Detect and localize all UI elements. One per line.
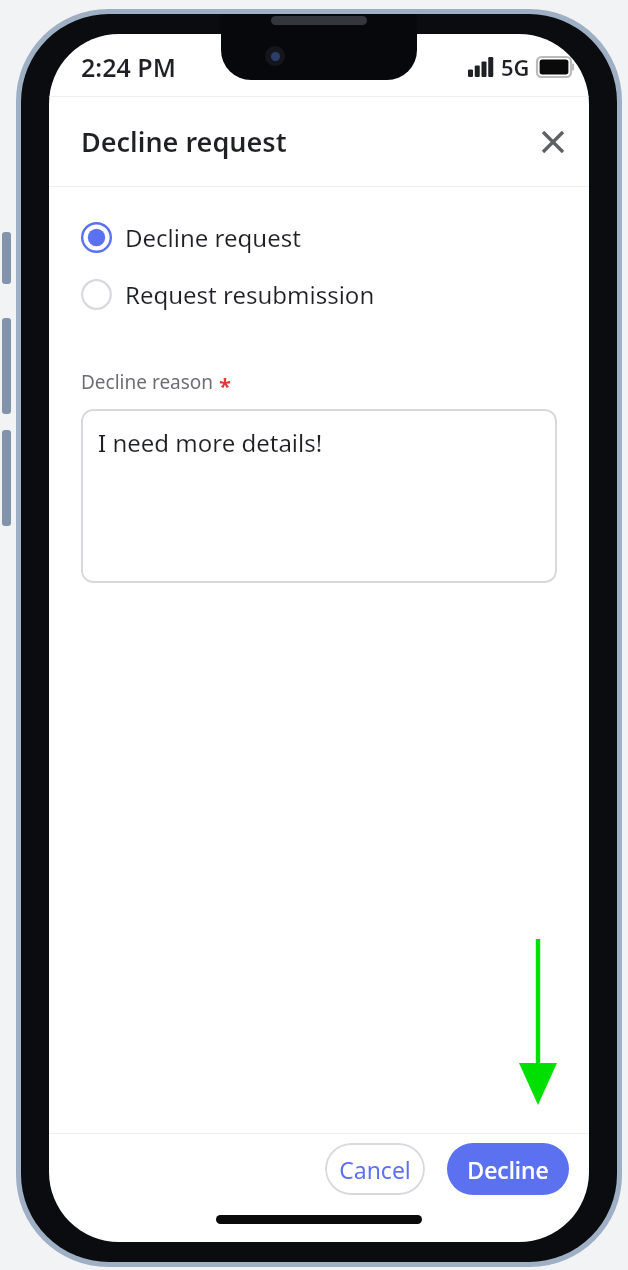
staticText: Decline reason (81, 369, 214, 395)
staticText: Request resubmission (125, 278, 375, 311)
staticText: 5G (501, 52, 530, 82)
button[interactable]: Cancel (325, 1143, 425, 1195)
staticText: Cancel (339, 1154, 411, 1185)
button[interactable]: I need more details! (81, 409, 557, 583)
staticText: Decline (467, 1154, 549, 1185)
button[interactable]: Close (529, 118, 577, 166)
button[interactable]: Decline request (49, 215, 589, 260)
staticText: * (219, 370, 231, 400)
button[interactable]: Decline (447, 1143, 569, 1195)
staticText: Decline request (125, 221, 301, 254)
staticText: 2:24 PM (81, 50, 176, 84)
staticText: I need more details! (98, 426, 323, 459)
button[interactable]: Request resubmission (49, 272, 589, 317)
staticText: Decline request (81, 123, 287, 160)
